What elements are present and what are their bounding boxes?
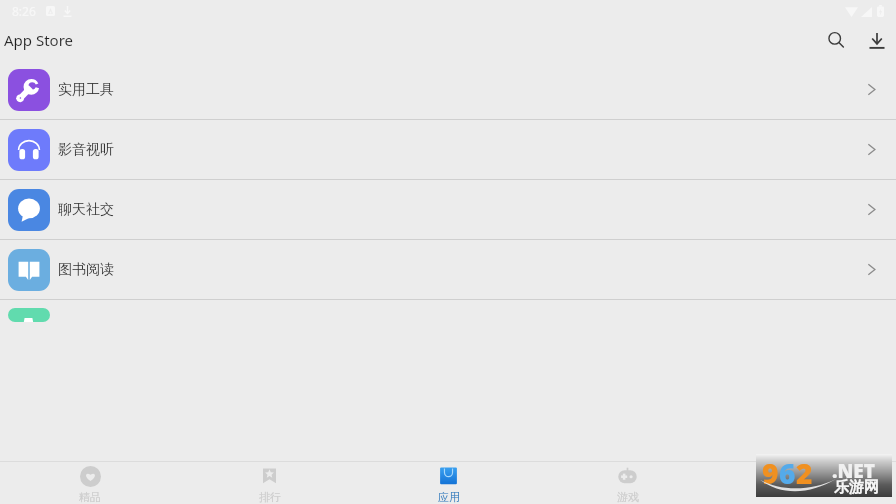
button[interactable]: 精品: [0, 462, 180, 504]
staticText: 排行: [259, 490, 281, 504]
button[interactable]: 游戏: [538, 462, 717, 504]
button[interactable]: 聊天社交: [0, 180, 896, 239]
button[interactable]: 图书阅读: [0, 240, 896, 299]
staticText: 游戏: [617, 490, 639, 504]
button[interactable]: Downloads: [859, 25, 893, 59]
button[interactable]: 实用工具: [0, 60, 896, 119]
staticText: 聊天社交: [58, 201, 114, 219]
button[interactable]: 影音视听: [0, 120, 896, 179]
button[interactable]: 应用: [359, 462, 538, 504]
staticText: 影音视听: [58, 141, 114, 159]
button[interactable]: 排行: [180, 462, 359, 504]
staticText: .NET: [832, 458, 875, 484]
staticText: 8:26: [12, 3, 36, 19]
staticText: 9: [762, 454, 779, 492]
staticText: App Store: [4, 30, 74, 50]
staticText: 应用: [438, 490, 460, 504]
staticText: 乐游网: [834, 478, 879, 497]
button[interactable]: [0, 300, 896, 322]
staticText: 实用工具: [58, 81, 114, 99]
staticText: 6: [779, 454, 796, 492]
staticText: 2: [796, 454, 813, 492]
staticText: 图书阅读: [58, 261, 114, 279]
staticText: 精品: [79, 490, 101, 504]
button[interactable]: Search: [818, 25, 852, 59]
